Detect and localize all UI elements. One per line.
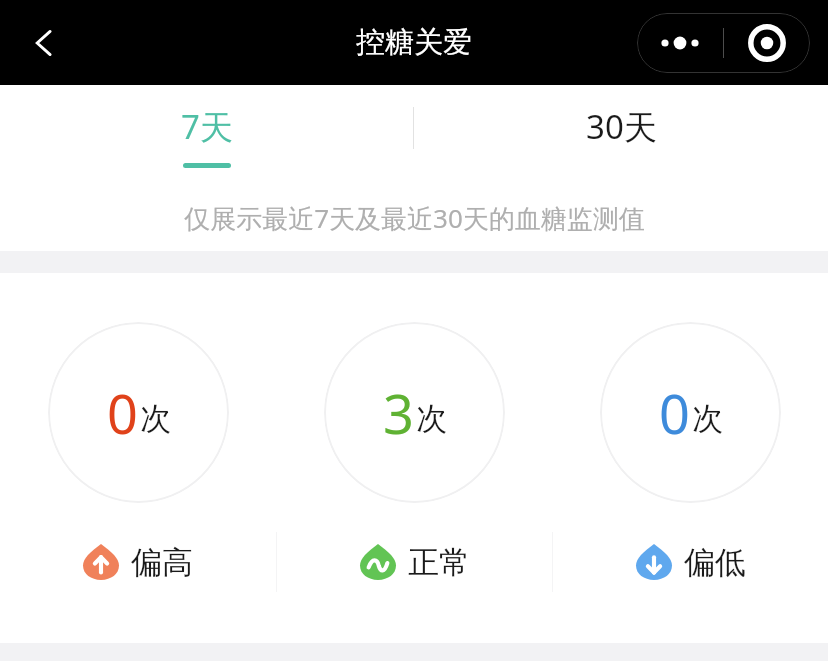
button[interactable]: 正常 <box>277 532 552 592</box>
button[interactable]: 0 <box>552 322 828 503</box>
button[interactable]: 3 <box>276 322 552 503</box>
button[interactable]: 偏低 <box>553 532 828 592</box>
staticText: 次 <box>140 399 171 438</box>
staticText: 控糖关爱 <box>356 24 472 61</box>
staticText: 30天 <box>586 104 657 149</box>
staticText: 7天 <box>181 104 233 149</box>
button[interactable]: Close <box>724 13 810 73</box>
staticText: 0 <box>107 376 138 450</box>
button[interactable]: More options <box>637 13 723 73</box>
staticText: 仅展示最近7天及最近30天的血糖监测值 <box>184 200 645 236</box>
button[interactable]: 0 <box>0 322 276 503</box>
button[interactable]: 偏高 <box>0 532 276 592</box>
staticText: 偏高 <box>131 543 193 582</box>
staticText: 次 <box>416 399 447 438</box>
staticText: 0 <box>659 376 690 450</box>
button[interactable]: 7天 <box>0 85 414 185</box>
button[interactable]: Back <box>16 15 72 71</box>
button[interactable]: 30天 <box>414 85 828 185</box>
staticText: 3 <box>383 376 414 450</box>
staticText: 正常 <box>408 543 470 582</box>
staticText: 次 <box>692 399 723 438</box>
staticText: 偏低 <box>684 543 746 582</box>
